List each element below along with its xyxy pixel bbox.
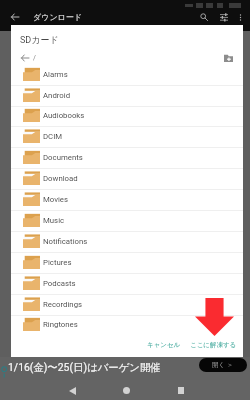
- button[interactable]: Android: [11, 86, 243, 107]
- button[interactable]: Movies: [11, 190, 243, 211]
- staticText: Pictures: [43, 258, 72, 267]
- staticText: Download: [43, 174, 78, 183]
- staticText: ダウンロード: [33, 12, 82, 22]
- button[interactable]: Notifications: [11, 232, 243, 253]
- button[interactable]: 開く ＞: [199, 358, 247, 372]
- staticText: Notifications: [43, 237, 88, 246]
- button[interactable]: Back: [62, 380, 83, 400]
- button[interactable]: Recordings: [11, 295, 243, 316]
- button[interactable]: Podcasts: [11, 274, 243, 295]
- button[interactable]: New folder: [219, 48, 238, 67]
- staticText: Movies: [43, 195, 69, 204]
- staticText: Android: [43, 91, 71, 100]
- staticText: DCIM: [43, 132, 63, 141]
- button[interactable]: Home: [116, 380, 137, 400]
- button[interactable]: More options: [233, 10, 247, 24]
- button[interactable]: DCIM: [11, 127, 243, 148]
- button[interactable]: Music: [11, 211, 243, 232]
- staticText: /: [33, 54, 36, 62]
- button[interactable]: キャンセル: [144, 339, 184, 351]
- staticText: Music: [43, 216, 65, 225]
- button[interactable]: Sort options: [215, 8, 233, 26]
- button[interactable]: Back: [6, 8, 24, 26]
- staticText: Audiobooks: [43, 111, 85, 120]
- staticText: ここに解凍する: [190, 341, 237, 349]
- button[interactable]: Search: [195, 8, 213, 26]
- button[interactable]: Download: [11, 169, 243, 190]
- staticText: Recordings: [43, 300, 83, 309]
- button[interactable]: Recents: [170, 380, 191, 400]
- button[interactable]: Alarms: [11, 65, 243, 86]
- staticText: 1/16(金)〜25(日)はバーゲン開催: [8, 361, 161, 374]
- staticText: 開く ＞: [212, 361, 234, 369]
- button[interactable]: ここに解凍する: [187, 339, 240, 351]
- button[interactable]: Pictures: [11, 253, 243, 274]
- staticText: Alarms: [43, 70, 68, 79]
- staticText: Podcasts: [43, 279, 76, 288]
- button[interactable]: Documents: [11, 148, 243, 169]
- staticText: キャンセル: [147, 341, 181, 349]
- button[interactable]: Up one level: [18, 51, 31, 64]
- staticText: SDカード: [20, 34, 59, 45]
- button[interactable]: Audiobooks: [11, 106, 243, 127]
- staticText: Documents: [43, 153, 83, 162]
- button[interactable]: Ringtones: [11, 315, 243, 336]
- staticText: Ringtones: [43, 320, 78, 329]
